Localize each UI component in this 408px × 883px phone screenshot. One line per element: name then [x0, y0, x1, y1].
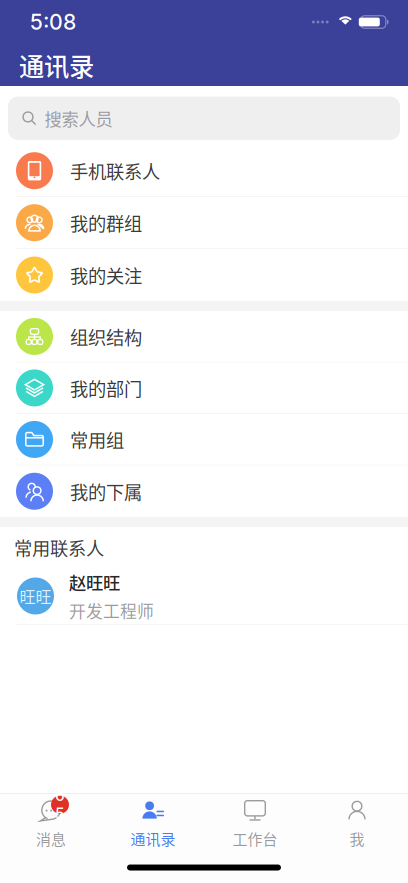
staticText: 常用组 [70, 426, 124, 453]
staticText: 我的群组 [70, 209, 142, 236]
staticText: 搜索人员 [45, 106, 113, 131]
button[interactable]: 旺旺 [0, 568, 408, 625]
staticText: 开发工程师 [69, 598, 154, 623]
staticText: 我的关注 [70, 262, 142, 288]
staticText: 组织结构 [70, 323, 142, 350]
staticText: 常用联系人 [14, 534, 104, 561]
button[interactable]: 65 [0, 794, 102, 852]
staticText: 手机联系人 [70, 157, 160, 184]
button[interactable]: 手机联系人 [0, 145, 408, 197]
staticText: 旺旺 [19, 584, 51, 608]
staticText: 我的部门 [70, 375, 142, 401]
staticText: 工作台 [232, 828, 277, 849]
button[interactable]: 我的下属 [0, 465, 408, 517]
staticText: 消息 [36, 828, 66, 849]
staticText: 我 [349, 828, 364, 849]
staticText: 65 [55, 786, 65, 823]
button[interactable]: 常用组 [0, 414, 408, 465]
button[interactable]: 我的关注 [0, 249, 408, 301]
button[interactable]: 工作台 [204, 794, 306, 852]
staticText: 通讯录 [19, 47, 94, 83]
button[interactable]: 组织结构 [0, 311, 408, 362]
button[interactable]: 我 [306, 794, 408, 852]
button[interactable]: 我的部门 [0, 362, 408, 414]
staticText: 通讯录 [130, 828, 175, 849]
button[interactable]: 通讯录 [102, 794, 204, 852]
staticText: 我的下属 [70, 478, 142, 504]
staticText: 赵旺旺 [69, 569, 120, 594]
button[interactable]: 我的群组 [0, 197, 408, 249]
staticText: 5:08 [30, 9, 76, 35]
